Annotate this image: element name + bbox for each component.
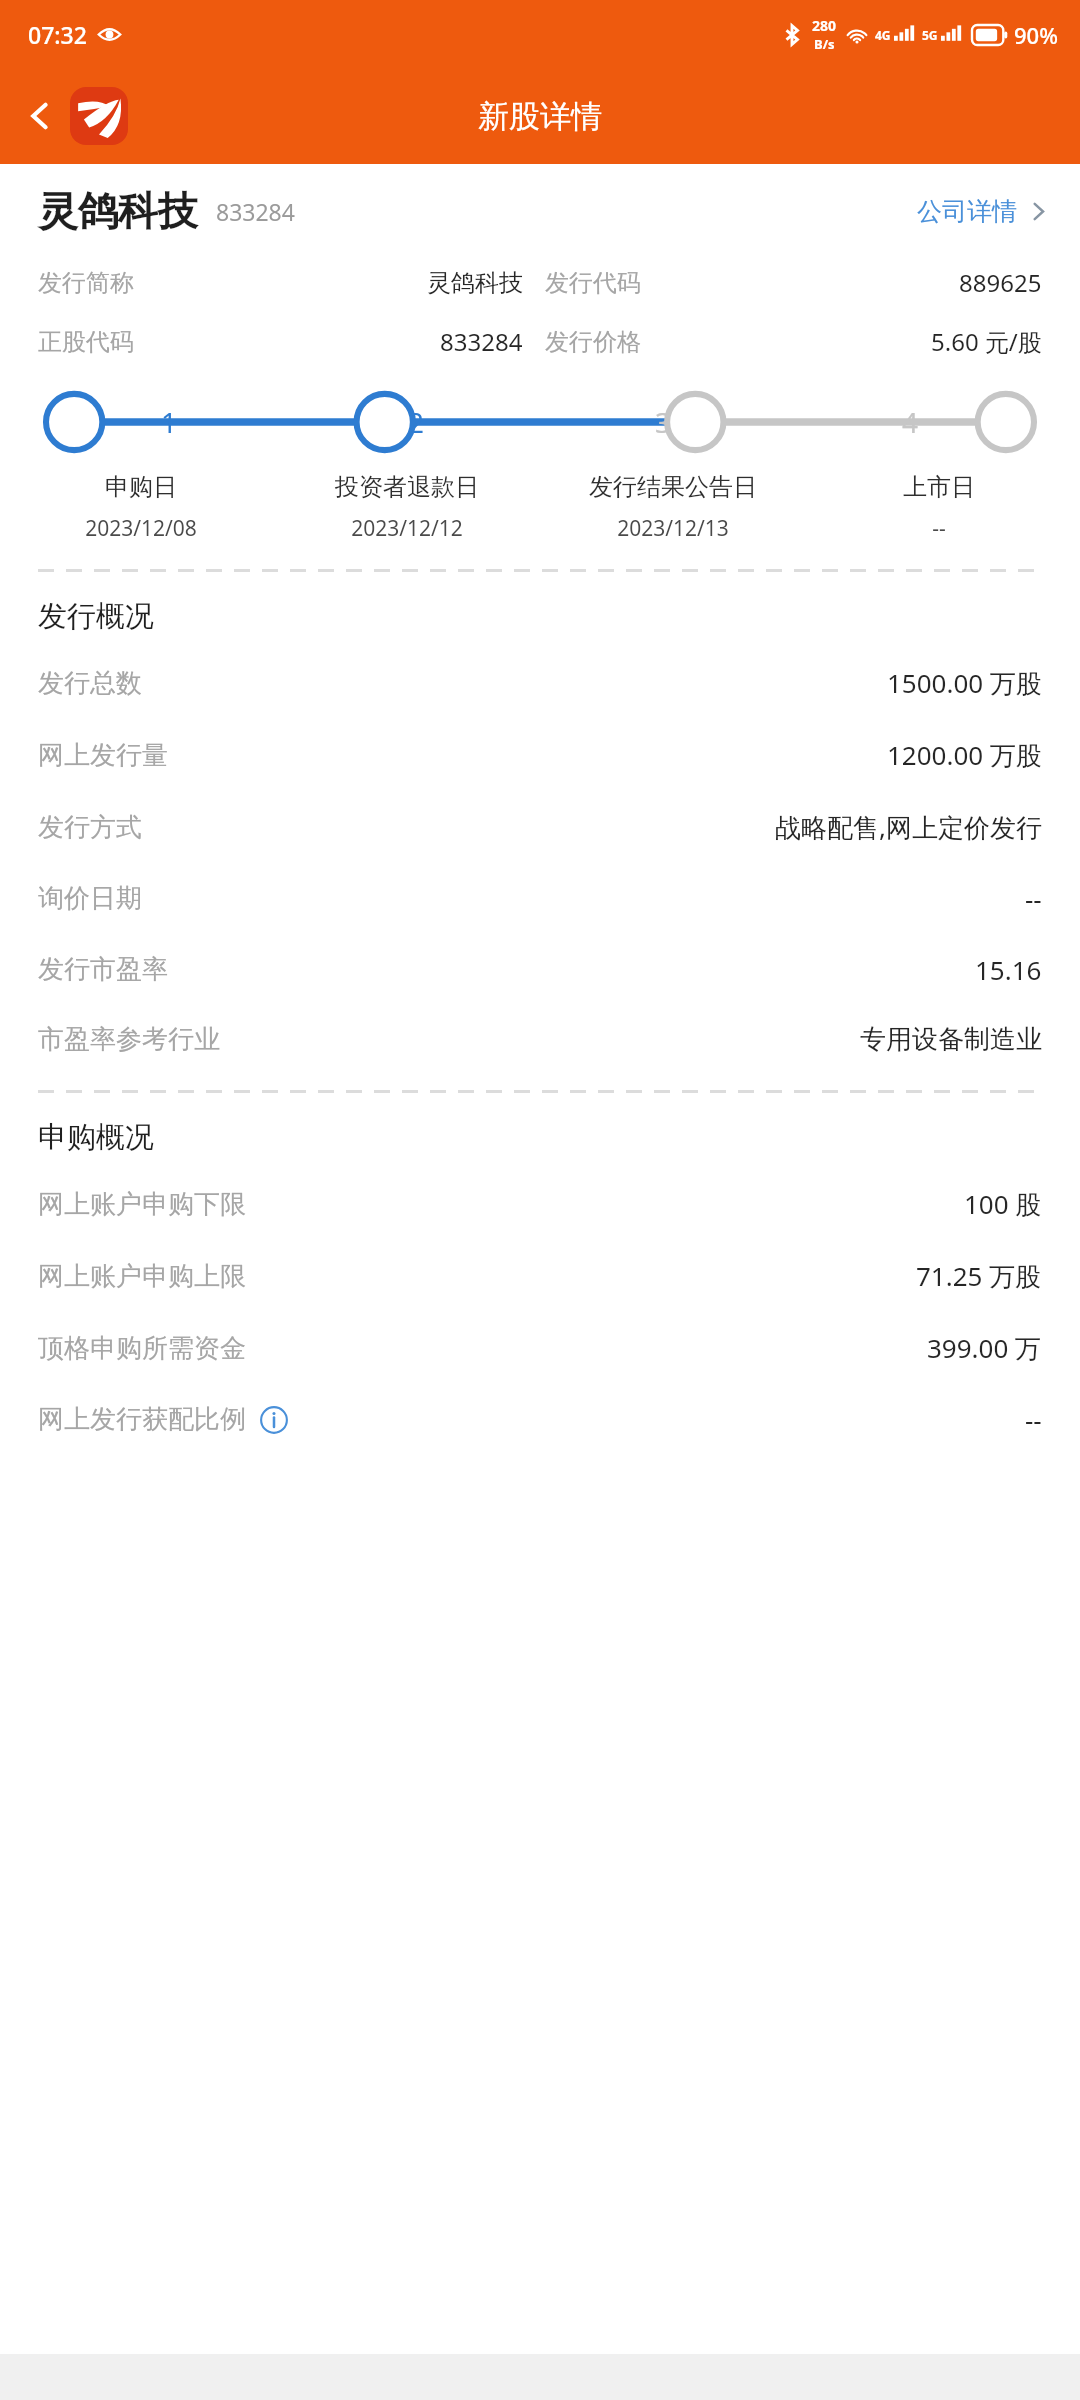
staticText: 90% <box>1014 20 1058 50</box>
staticText: 发行结果公告日 <box>589 472 757 502</box>
staticText: 灵鸽科技 <box>38 186 198 236</box>
staticText: 市盈率参考行业 <box>38 1023 220 1056</box>
button[interactable]: 顶格申购所需资金 <box>0 1312 1080 1384</box>
staticText: 5.60 元/股 <box>931 325 1042 358</box>
button[interactable]: Back <box>12 88 68 144</box>
staticText: 发行价格 <box>545 327 641 357</box>
button[interactable]: 公司详情 <box>913 188 1052 235</box>
staticText: 2023/12/12 <box>351 514 463 543</box>
staticText: -- <box>932 514 946 543</box>
staticText: 2023/12/13 <box>617 514 729 543</box>
button[interactable]: 发行方式 <box>0 791 1080 863</box>
staticText: 280 <box>812 16 837 35</box>
staticText: -- <box>1025 881 1042 916</box>
staticText: 3 <box>655 403 672 441</box>
staticText: 833284 <box>440 325 523 358</box>
button[interactable]: 市盈率参考行业 <box>0 1005 1080 1074</box>
staticText: 上市日 <box>903 472 975 502</box>
staticText: 2023/12/08 <box>85 514 197 543</box>
staticText: 发行代码 <box>545 268 641 298</box>
button[interactable]: 发行市盈率 <box>0 934 1080 1005</box>
staticText: 发行简称 <box>38 268 134 298</box>
staticText: 正股代码 <box>38 327 134 357</box>
staticText: 公司详情 <box>917 196 1017 227</box>
staticText: 发行市盈率 <box>38 953 168 986</box>
staticText: -- <box>1025 1402 1042 1437</box>
staticText: 1 <box>161 403 178 441</box>
button[interactable]: 网上发行量 <box>0 719 1080 791</box>
staticText: 申购概况 <box>38 1119 154 1156</box>
staticText: 战略配售,网上定价发行 <box>775 809 1042 845</box>
staticText: 71.25 万股 <box>916 1258 1042 1294</box>
staticText: 发行概况 <box>38 598 154 635</box>
staticText: 网上账户申购下限 <box>38 1188 246 1221</box>
staticText: 灵鸽科技 <box>427 268 523 298</box>
staticText: 网上账户申购上限 <box>38 1260 246 1293</box>
button[interactable]: 网上账户申购下限 <box>0 1168 1080 1240</box>
staticText: 2 <box>408 403 425 441</box>
staticText: 顶格申购所需资金 <box>38 1332 246 1365</box>
staticText: 新股详情 <box>478 97 602 136</box>
staticText: 投资者退款日 <box>335 472 479 502</box>
button[interactable]: Info <box>260 1406 288 1434</box>
staticText: 100 股 <box>964 1186 1042 1222</box>
staticText: 网上发行量 <box>38 739 168 772</box>
button[interactable]: 询价日期 <box>0 863 1080 934</box>
staticText: 申购日 <box>105 472 177 502</box>
staticText: 07:32 <box>28 19 87 50</box>
button[interactable]: 网上账户申购上限 <box>0 1240 1080 1312</box>
button[interactable]: 发行总数 <box>0 647 1080 719</box>
staticText: 询价日期 <box>38 882 142 915</box>
staticText: 4G <box>875 27 891 43</box>
staticText: 专用设备制造业 <box>860 1023 1042 1056</box>
staticText: B/s <box>814 35 835 53</box>
staticText: 发行总数 <box>38 667 142 700</box>
staticText: 网上发行获配比例 <box>38 1403 246 1436</box>
button[interactable]: 网上发行获配比例 <box>0 1384 1080 1455</box>
staticText: 399.00 万 <box>927 1330 1042 1366</box>
staticText: 5G <box>922 27 938 43</box>
staticText: 833284 <box>216 196 295 227</box>
staticText: 1500.00 万股 <box>887 665 1042 701</box>
staticText: 1200.00 万股 <box>887 737 1042 773</box>
staticText: 15.16 <box>975 952 1042 987</box>
staticText: 发行方式 <box>38 811 142 844</box>
button[interactable]: App logo <box>70 87 128 145</box>
staticText: 4 <box>902 403 919 441</box>
staticText: 889625 <box>959 266 1042 299</box>
